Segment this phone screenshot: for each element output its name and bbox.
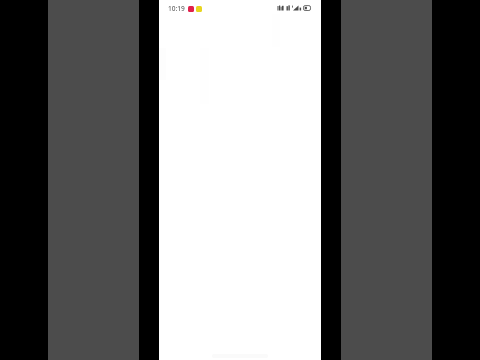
button[interactable]: Clock and notifications — [168, 4, 202, 13]
button[interactable]: App content — [159, 0, 321, 360]
staticText: 10:19 — [168, 4, 185, 13]
button[interactable]: Network and battery status — [277, 5, 311, 11]
